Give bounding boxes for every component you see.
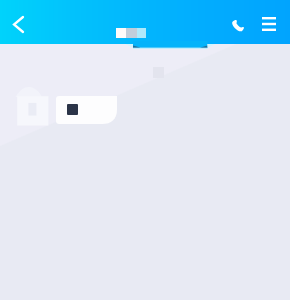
button[interactable]: Call (224, 2, 252, 46)
button[interactable]: Menu (254, 2, 283, 46)
button[interactable]: Back (0, 3, 36, 45)
